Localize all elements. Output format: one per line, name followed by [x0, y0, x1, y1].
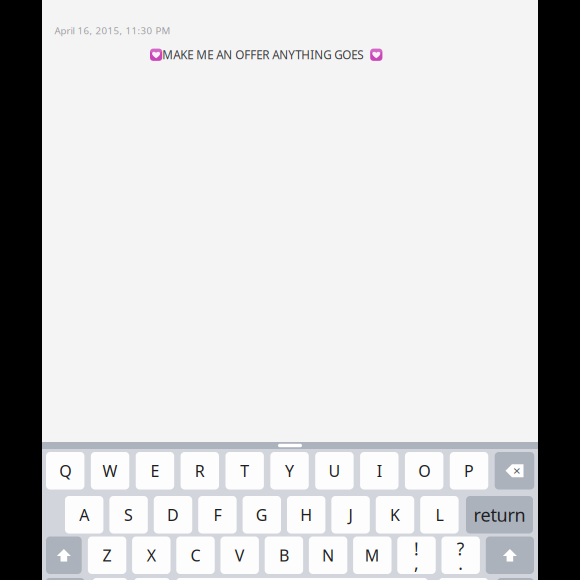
button[interactable]: P	[450, 452, 488, 489]
button[interactable]: L	[420, 496, 459, 533]
button[interactable]: Z	[88, 536, 126, 574]
staticText: C	[190, 545, 200, 566]
staticText: M	[365, 545, 380, 566]
staticText: ?	[457, 537, 465, 560]
button[interactable]: Key	[134, 578, 170, 580]
button[interactable]: return	[466, 496, 533, 533]
staticText: H	[300, 504, 312, 525]
staticText: V	[235, 545, 245, 566]
button[interactable]: G	[243, 496, 281, 533]
staticText: G	[256, 504, 268, 525]
button[interactable]: O	[405, 452, 443, 489]
button[interactable]: Key	[92, 578, 127, 580]
button[interactable]: Shift	[46, 536, 82, 574]
staticText: ,	[414, 552, 419, 575]
button[interactable]: ?	[441, 536, 480, 574]
staticText: I	[377, 460, 382, 481]
staticText: B	[279, 545, 289, 566]
staticText: April 16, 2015, 11:30 PM	[54, 24, 170, 37]
staticText: O	[418, 460, 430, 481]
button[interactable]: Delete	[495, 452, 534, 489]
button[interactable]: Shift	[486, 536, 534, 574]
button[interactable]: !	[397, 536, 436, 574]
button[interactable]: Key	[176, 578, 428, 580]
staticText: F	[213, 504, 221, 525]
button[interactable]: A	[65, 496, 103, 533]
button[interactable]: N	[309, 536, 347, 574]
button[interactable]: J	[331, 496, 370, 533]
staticText: Y	[285, 460, 294, 481]
button[interactable]: U	[315, 452, 354, 489]
staticText: !	[414, 537, 419, 560]
staticText: E	[150, 460, 159, 481]
staticText: S	[124, 504, 133, 525]
staticText: return	[473, 503, 525, 527]
staticText: .	[458, 552, 463, 575]
staticText: U	[328, 460, 340, 481]
staticText: K	[390, 504, 400, 525]
button[interactable]: B	[265, 536, 303, 574]
staticText: Q	[59, 460, 71, 481]
button[interactable]: C	[176, 536, 215, 574]
staticText: MAKE ME AN OFFER ANYTHING GOES	[162, 47, 366, 62]
staticText: P	[464, 460, 474, 481]
button[interactable]: Key	[45, 578, 85, 580]
button[interactable]: Q	[46, 452, 84, 489]
button[interactable]: R	[181, 452, 219, 489]
button[interactable]: M	[353, 536, 391, 574]
button[interactable]: K	[376, 496, 414, 533]
staticText: W	[103, 460, 118, 481]
button[interactable]: S	[109, 496, 148, 533]
staticText: N	[322, 545, 334, 566]
button[interactable]: Key	[439, 578, 488, 580]
button[interactable]: Key	[497, 578, 534, 580]
staticText: Z	[103, 545, 112, 566]
button[interactable]: D	[154, 496, 192, 533]
staticText: D	[167, 504, 179, 525]
button[interactable]: E	[136, 452, 174, 489]
button[interactable]: W	[91, 452, 129, 489]
staticText: L	[435, 504, 443, 525]
staticText: T	[240, 460, 249, 481]
staticText: X	[147, 545, 156, 566]
button[interactable]: Y	[270, 452, 309, 489]
staticText: J	[349, 504, 353, 525]
button[interactable]: F	[198, 496, 237, 533]
staticText: A	[79, 504, 89, 525]
button[interactable]: I	[360, 452, 398, 489]
staticText: ×	[513, 461, 521, 479]
staticText: R	[195, 460, 205, 481]
button[interactable]: X	[132, 536, 170, 574]
button[interactable]: H	[287, 496, 325, 533]
button[interactable]: V	[220, 536, 259, 574]
button[interactable]: T	[225, 452, 264, 489]
